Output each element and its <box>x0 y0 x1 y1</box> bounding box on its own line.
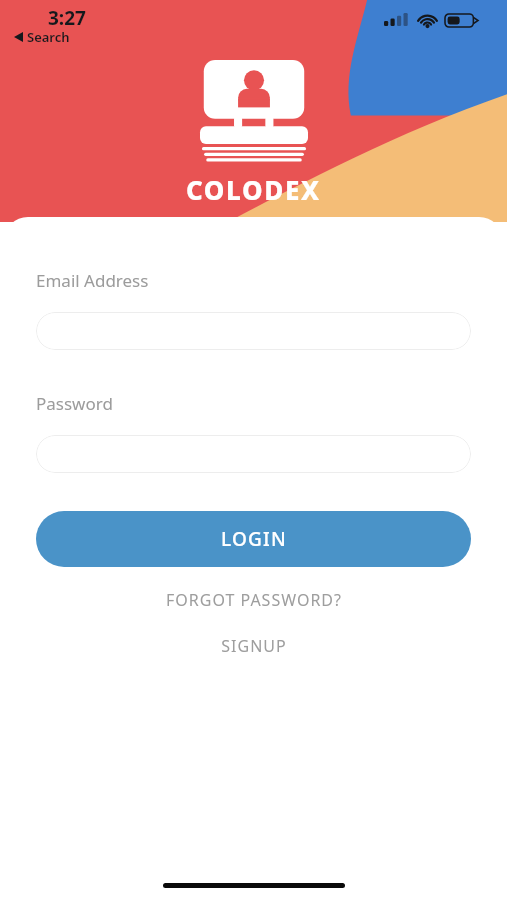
staticText: LOGIN <box>221 526 287 552</box>
staticText: SIGNUP <box>221 635 287 657</box>
staticText: COLODEX <box>186 172 321 207</box>
button[interactable]: FORGOT PASSWORD? <box>36 589 471 611</box>
staticText: FORGOT PASSWORD? <box>166 589 342 611</box>
other: Wi-Fi <box>417 13 438 27</box>
staticText: 3:27 <box>48 5 86 31</box>
staticText: Password <box>36 392 113 415</box>
staticText: Search <box>27 28 70 46</box>
button[interactable] <box>36 435 471 473</box>
button[interactable] <box>36 312 471 350</box>
button[interactable]: LOGIN <box>36 511 471 567</box>
other: Cellular signal <box>384 13 410 26</box>
staticText: Email Address <box>36 269 149 292</box>
button[interactable]: SIGNUP <box>36 635 471 657</box>
other: Battery <box>445 14 478 27</box>
other: Colodex logo <box>200 60 308 168</box>
